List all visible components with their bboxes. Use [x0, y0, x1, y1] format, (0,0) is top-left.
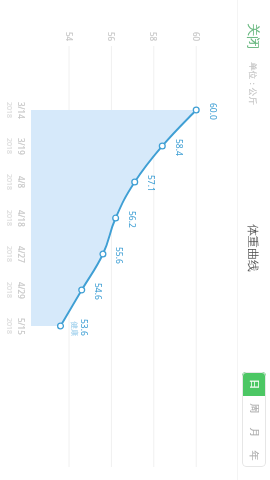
button[interactable]: 关闭	[237, 14, 270, 58]
staticText: 单位：公斤	[247, 62, 258, 105]
staticText: 日	[247, 379, 260, 389]
staticText: 关闭	[246, 23, 262, 49]
button[interactable]: 周	[242, 396, 266, 420]
button[interactable]: 年	[242, 444, 266, 467]
staticText: 体重曲线	[246, 224, 261, 272]
button[interactable]: 月	[242, 420, 266, 444]
staticText: 月	[247, 427, 260, 437]
button[interactable]: 日	[242, 372, 266, 396]
staticText: 周	[247, 403, 260, 413]
staticText: 年	[247, 450, 260, 460]
